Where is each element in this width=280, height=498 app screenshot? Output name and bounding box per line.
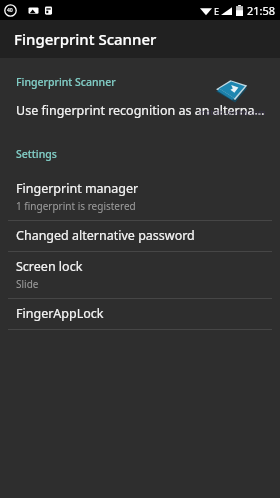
staticText: FingerAppLock (16, 305, 104, 322)
staticText: Settings (16, 147, 57, 161)
button[interactable]: FingerAppLock (0, 299, 280, 329)
staticText: mobile-review.com (199, 107, 266, 117)
staticText: 40 (7, 7, 13, 14)
button[interactable]: Changed alternative password (0, 221, 280, 251)
staticText: Use fingerprint recognition as an altern… (16, 102, 268, 119)
staticText: Changed alternative password (16, 227, 195, 244)
staticText: Slide (16, 277, 39, 291)
button[interactable]: Fingerprint manager (0, 174, 280, 220)
staticText: Fingerprint Scanner (16, 75, 116, 89)
button[interactable]: Use fingerprint recognition as an altern… (0, 100, 280, 121)
staticText: Fingerprint manager (16, 180, 139, 197)
staticText: 21:58 (247, 3, 276, 18)
staticText: E (214, 5, 220, 17)
staticText: 1 fingerprint is registered (16, 199, 136, 213)
staticText: Screen lock (16, 258, 83, 275)
button[interactable]: Screen lock (0, 252, 280, 298)
staticText: Fingerprint Scanner (14, 29, 157, 49)
